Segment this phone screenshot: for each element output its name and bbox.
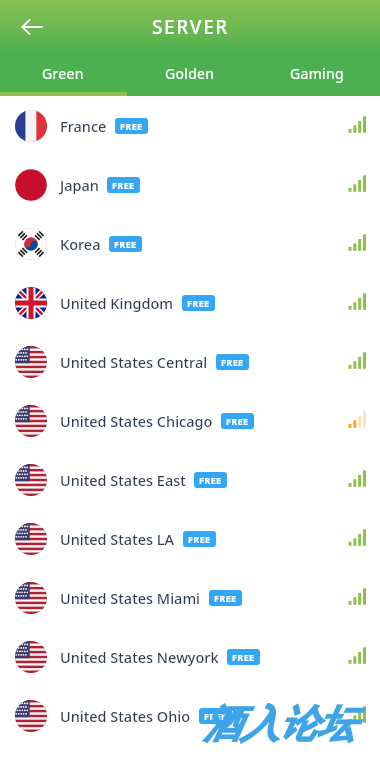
staticText: Green	[42, 64, 84, 83]
staticText: FREE	[232, 651, 255, 663]
staticText: FREE	[187, 297, 210, 309]
staticText: United Kingdom	[60, 293, 174, 313]
button[interactable]: Korea	[0, 214, 380, 273]
button[interactable]: Golden	[126, 54, 253, 92]
button[interactable]: Back	[12, 7, 52, 47]
button[interactable]: United States East	[0, 450, 380, 509]
button[interactable]: United States Newyork	[0, 627, 380, 686]
staticText: FREE	[114, 238, 137, 250]
button[interactable]: United States Chicago	[0, 391, 380, 450]
staticText: United States Ohio	[60, 706, 191, 726]
staticText: FREE	[188, 533, 211, 545]
staticText: FREE	[199, 474, 222, 486]
staticText: FREE	[226, 415, 249, 427]
staticText: United States Newyork	[60, 647, 219, 667]
staticText: Korea	[60, 234, 101, 254]
staticText: FREE	[120, 120, 143, 132]
staticText: United States East	[60, 470, 186, 490]
staticText: FREE	[204, 710, 227, 722]
button[interactable]: United States LA	[0, 509, 380, 568]
staticText: FREE	[112, 179, 135, 191]
staticText: Golden	[165, 64, 215, 83]
staticText: FREE	[221, 356, 244, 368]
button[interactable]: United Kingdom	[0, 273, 380, 332]
staticText: United States Miami	[60, 588, 201, 608]
button[interactable]: United States Miami	[0, 568, 380, 627]
staticText: SERVER	[152, 14, 229, 40]
button[interactable]: United States Ohio	[0, 686, 380, 745]
button[interactable]: United States Central	[0, 332, 380, 391]
button[interactable]: Gaming	[253, 54, 380, 92]
staticText: 酒入论坛	[203, 700, 355, 748]
staticText: United States LA	[60, 529, 175, 549]
staticText: Gaming	[290, 64, 344, 83]
staticText: FREE	[214, 592, 237, 604]
button[interactable]: France	[0, 96, 380, 155]
staticText: Japan	[60, 175, 99, 195]
button[interactable]: Green	[0, 54, 126, 92]
button[interactable]: Japan	[0, 155, 380, 214]
staticText: United States Central	[60, 352, 208, 372]
staticText: France	[60, 116, 107, 136]
staticText: United States Chicago	[60, 411, 213, 431]
